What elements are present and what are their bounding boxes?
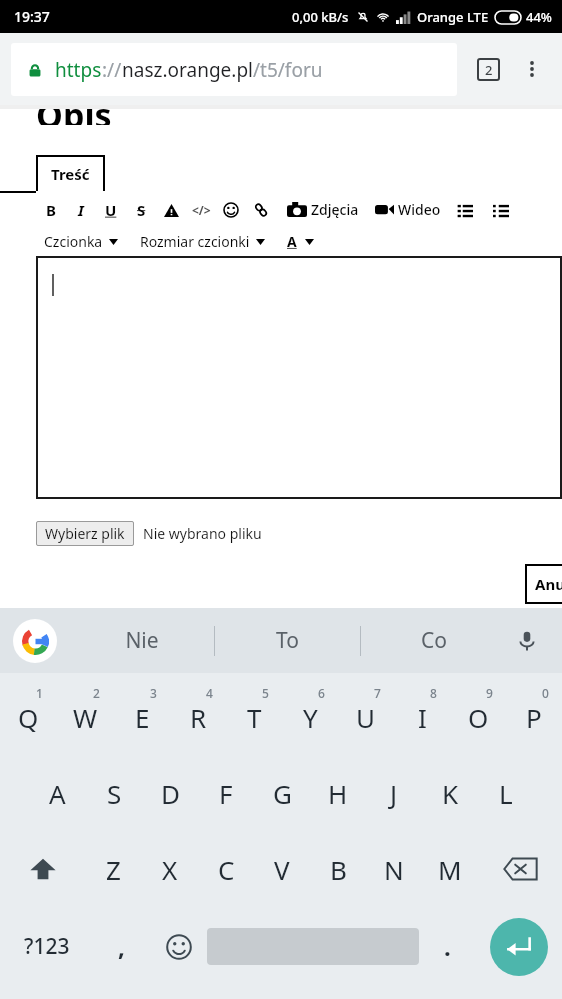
button[interactable]: Emoji [216,196,246,224]
button[interactable]: G [254,755,310,831]
button[interactable]: , [93,907,150,986]
staticText: , [118,930,125,963]
button[interactable]: F [198,755,254,831]
staticText: </> [192,202,211,218]
button[interactable]: Voice input [506,608,548,673]
button[interactable]: Czcionka [44,232,118,251]
button[interactable]: Tabs [469,50,507,88]
staticText: I [78,200,84,220]
staticText: Wideo [398,200,441,219]
button[interactable]: Shift [0,831,85,907]
button[interactable]: Text color [287,232,314,251]
button[interactable]: A [29,755,86,831]
button[interactable]: Text color [156,196,186,224]
button[interactable]: Nie [70,608,214,673]
button[interactable]: Underline [96,196,126,224]
staticText: 9 [486,685,493,701]
button[interactable]: ?123 [0,907,93,986]
staticText: F [219,776,233,811]
button[interactable]: D [142,755,198,831]
staticText: nasz.orange.pl [122,57,253,83]
button[interactable]: U [338,679,394,755]
staticText: B [46,200,56,220]
button[interactable]: B [310,831,366,907]
button[interactable]: Backspace [478,831,562,907]
button[interactable]: . [419,907,476,986]
staticText: X [162,852,178,887]
button[interactable]: Code [186,196,216,224]
staticText: V [274,852,290,887]
button[interactable]: W [57,679,114,755]
staticText: P [526,700,542,735]
staticText: Z [106,852,121,887]
staticText: R [190,700,207,735]
button[interactable]: Bold [36,196,66,224]
staticText: M [438,852,462,887]
button[interactable]: Bulleted list [490,199,512,221]
button[interactable]: H [310,755,366,831]
staticText: O [468,700,489,735]
staticText: /t5/foru [253,57,323,83]
button[interactable]: R [170,679,226,755]
staticText: Zdjęcia [311,200,359,219]
button[interactable]: J [366,755,422,831]
button[interactable]: X [142,831,198,907]
button[interactable]: Y [282,679,338,755]
button[interactable]: Italic [66,196,96,224]
staticText: K [442,776,459,811]
staticText: 6 [318,685,325,701]
button[interactable]: https [11,43,457,96]
staticText: 19:37 [14,7,50,26]
button[interactable]: Q [0,679,57,755]
staticText: https [55,57,102,83]
button[interactable]: Strikethrough [126,196,156,224]
staticText: 4 [206,685,213,701]
button[interactable]: Z [85,831,142,907]
button[interactable]: Zdjęcia [284,200,362,219]
button[interactable]: T [226,679,282,755]
button[interactable]: Treść [36,155,562,193]
button[interactable]: O [450,679,506,755]
staticText: A [49,776,66,811]
staticText: H [328,776,348,811]
staticText: J [390,776,398,811]
staticText: 3 [150,685,157,701]
button[interactable]: M [422,831,478,907]
button[interactable]: L [478,755,534,831]
button[interactable]: Numbered list [454,199,476,221]
staticText: E [135,700,150,735]
button[interactable]: V [254,831,310,907]
button[interactable]: P [506,679,562,755]
button[interactable]: Emoji [150,907,207,986]
button[interactable]: To [215,608,360,673]
button[interactable]: S [86,755,142,831]
button[interactable]: Space [207,907,419,986]
staticText: N [384,852,404,887]
staticText: . [444,930,451,963]
button[interactable]: E [114,679,170,755]
button[interactable]: K [422,755,478,831]
staticText: T [247,700,262,735]
button[interactable] [36,256,562,499]
button[interactable]: Co [361,608,506,673]
staticText: I [418,700,427,735]
button[interactable]: N [366,831,422,907]
staticText: Czcionka [44,232,103,251]
button[interactable]: Rozmiar czcionki [140,232,265,251]
button[interactable]: C [198,831,254,907]
button[interactable]: More options [513,50,551,88]
staticText: S [137,200,146,220]
button[interactable]: I [394,679,450,755]
staticText: 1 [36,685,43,701]
staticText: Opis [36,109,112,125]
staticText: :// [102,57,122,83]
staticText: B [330,852,347,887]
button[interactable]: Wideo [372,200,444,219]
button[interactable]: Enter [490,918,548,976]
button[interactable]: Link [246,196,276,224]
button[interactable]: Wybierz plik [36,521,134,546]
staticText: Rozmiar czcionki [140,232,250,251]
button[interactable]: Anuluj [525,564,562,604]
button[interactable]: Google [13,619,57,663]
staticText: 0 [542,685,549,701]
